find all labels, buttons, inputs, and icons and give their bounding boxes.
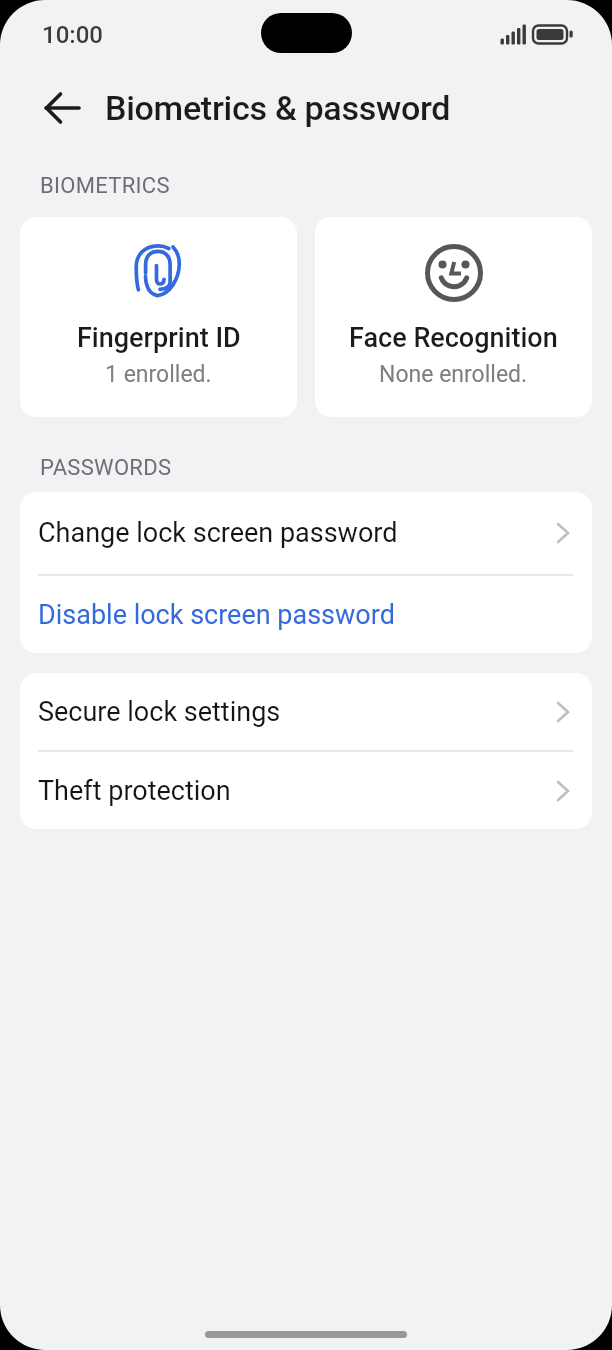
button[interactable] [42,92,80,124]
button[interactable]: Face Recognition [315,217,592,417]
staticText: Change lock screen password [38,517,556,549]
staticText: BIOMETRICS [40,173,170,199]
staticText: Fingerprint ID [77,322,241,354]
button[interactable]: Disable lock screen password [20,576,592,653]
staticText: Face Recognition [349,322,558,354]
staticText: Biometrics & password [105,88,451,128]
staticText: 1 enrolled. [105,361,212,388]
button[interactable]: Change lock screen password [20,492,592,574]
staticText: Disable lock screen password [38,599,570,631]
button[interactable]: Secure lock settings [20,673,592,750]
staticText: Theft protection [38,775,556,807]
staticText: PASSWORDS [40,455,172,481]
staticText: 10:00 [42,21,103,49]
staticText: None enrolled. [379,361,528,388]
staticText: Secure lock settings [38,696,556,728]
button[interactable]: Theft protection [20,752,592,829]
button[interactable]: Fingerprint ID [20,217,297,417]
